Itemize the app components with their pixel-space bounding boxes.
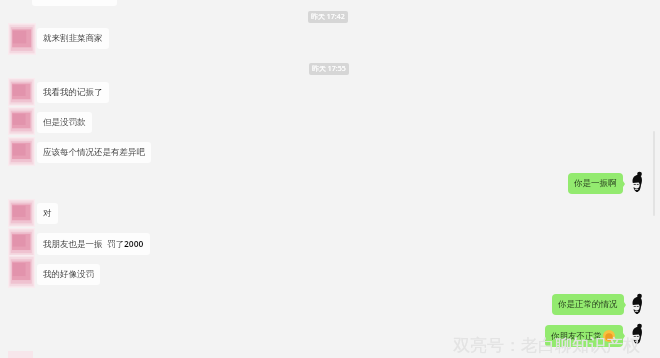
button[interactable]: 你朋友不正常: [545, 325, 625, 347]
button[interactable]: 对: [37, 203, 58, 224]
staticText: 双亮号：老白聊知识产权: [453, 335, 640, 356]
button[interactable]: Profile picture: [630, 324, 644, 345]
staticText: 你是正常的情况: [558, 299, 618, 310]
button[interactable]: 我的好像没罚: [37, 264, 100, 285]
button[interactable]: Contact avatar: [8, 23, 36, 55]
button[interactable]: 但是没罚款: [37, 112, 92, 133]
staticText: 我看我的记振了: [43, 87, 103, 98]
staticText: 我的好像没罚: [43, 269, 94, 280]
button[interactable]: 就来割韭菜商家: [37, 28, 109, 49]
staticText: 对: [43, 208, 52, 219]
button[interactable]: Contact avatar: [8, 228, 35, 257]
staticText: 就来割韭菜商家: [43, 33, 103, 44]
button[interactable]: Contact avatar: [8, 137, 35, 166]
button[interactable]: 我看我的记振了: [37, 82, 109, 103]
button[interactable]: Contact avatar: [8, 78, 35, 106]
staticText: 你是一振啊: [574, 178, 617, 189]
button[interactable]: Contact avatar: [8, 107, 35, 135]
button[interactable]: 应该每个情况还是有差异吧: [37, 142, 151, 163]
staticText: 但是没罚款: [43, 117, 86, 128]
staticText: 昨天 17:42: [311, 12, 345, 22]
button[interactable]: Contact avatar: [8, 199, 35, 227]
button[interactable]: 你是一振啊: [568, 173, 625, 194]
staticText: 我朋友也是一振 罚了2000: [43, 238, 144, 250]
button[interactable]: Profile picture: [630, 172, 644, 193]
button[interactable]: 我朋友也是一振 罚了2000: [37, 233, 150, 255]
button[interactable]: Profile picture: [630, 294, 644, 315]
staticText: 你朋友不正常: [551, 331, 602, 342]
staticText: 应该每个情况还是有差异吧: [43, 147, 145, 158]
button[interactable]: 你是正常的情况: [552, 294, 626, 315]
staticText: 昨天 17:55: [312, 64, 346, 74]
button[interactable]: Contact avatar: [8, 255, 35, 288]
